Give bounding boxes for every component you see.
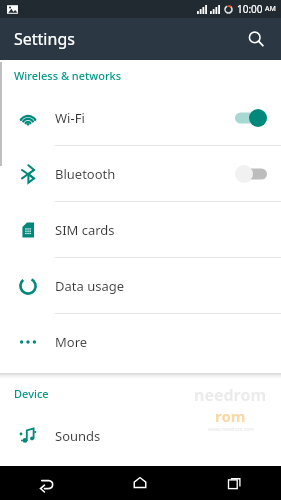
staticText: www.needrom.com (208, 426, 254, 433)
button[interactable]: Data usage (0, 258, 281, 313)
staticText: Wi-Fi (55, 109, 235, 127)
staticText: Wireless & networks (14, 68, 122, 83)
button[interactable]: Sounds (0, 408, 281, 463)
staticText: Device (14, 386, 49, 401)
button[interactable]: Recent apps (187, 466, 281, 500)
button[interactable]: More (0, 314, 281, 369)
button[interactable]: Search (239, 22, 273, 56)
button[interactable]: Bluetooth (0, 146, 281, 201)
staticText: Settings (14, 28, 75, 50)
staticText: AM (265, 4, 276, 14)
staticText: SIM cards (55, 221, 281, 239)
staticText: rom (215, 406, 246, 426)
button[interactable]: Home (93, 466, 187, 500)
button[interactable]: SIM cards (0, 202, 281, 257)
staticText: 10:00 (237, 2, 263, 16)
button[interactable]: Wi-Fi (0, 90, 281, 145)
staticText: Sounds (55, 427, 281, 445)
button[interactable]: Back (0, 466, 93, 500)
staticText: Bluetooth (55, 165, 235, 183)
staticText: Data usage (55, 277, 281, 295)
staticText: More (55, 333, 281, 351)
staticText: needrom (194, 384, 267, 406)
